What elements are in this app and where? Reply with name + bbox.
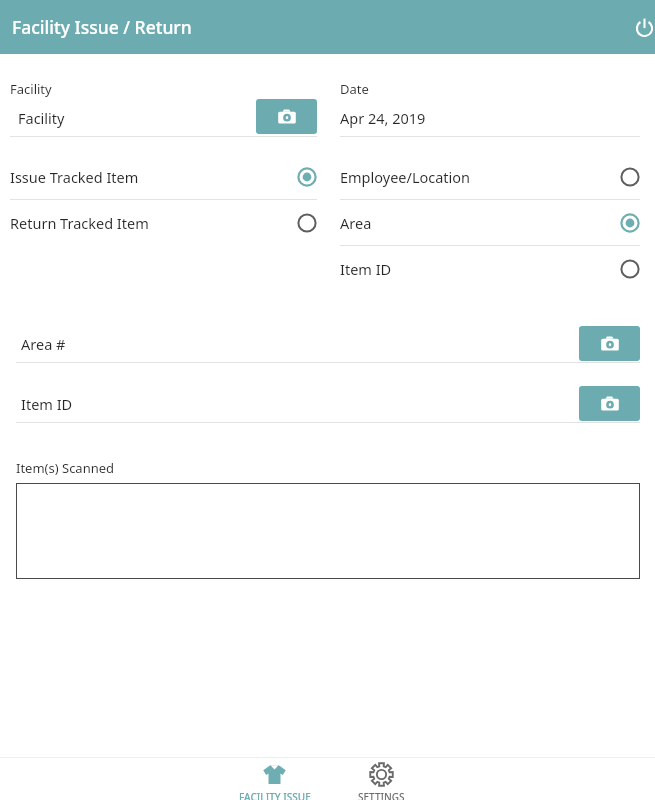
staticText: Facility bbox=[10, 80, 52, 98]
staticText: Item ID bbox=[340, 259, 620, 279]
button[interactable]: Apr 24, 2019 bbox=[340, 100, 640, 136]
button[interactable]: Item ID bbox=[16, 385, 640, 422]
staticText: Area bbox=[340, 213, 620, 233]
staticText: FACILITY ISSUE bbox=[239, 790, 311, 800]
button[interactable]: Item ID bbox=[340, 246, 640, 291]
staticText: Item ID bbox=[21, 394, 73, 414]
button[interactable]: Area # bbox=[16, 325, 640, 362]
button[interactable]: Facility bbox=[10, 100, 317, 136]
button[interactable]: Issue Tracked Item bbox=[10, 154, 317, 199]
staticText: Facility bbox=[18, 108, 65, 128]
button[interactable]: Scan with camera bbox=[256, 99, 317, 134]
button[interactable]: SETTINGS bbox=[333, 758, 430, 800]
button[interactable]: FACILITY ISSUE bbox=[226, 758, 323, 800]
staticText: Item(s) Scanned bbox=[16, 459, 115, 477]
staticText: Facility Issue / Return bbox=[12, 15, 192, 39]
staticText: Return Tracked Item bbox=[10, 213, 297, 233]
staticText: Employee/Location bbox=[340, 167, 620, 187]
staticText: SETTINGS bbox=[358, 790, 405, 800]
button[interactable]: Return Tracked Item bbox=[10, 200, 317, 245]
button[interactable]: Employee/Location bbox=[340, 154, 640, 199]
staticText: Date bbox=[340, 80, 369, 98]
button[interactable] bbox=[16, 483, 640, 579]
button[interactable]: Area bbox=[340, 200, 640, 245]
button[interactable]: Scan with camera bbox=[579, 386, 640, 421]
staticText: Apr 24, 2019 bbox=[340, 108, 426, 128]
button[interactable]: Scan with camera bbox=[579, 326, 640, 361]
staticText: Issue Tracked Item bbox=[10, 167, 297, 187]
staticText: Area # bbox=[21, 334, 66, 354]
button[interactable]: Power / Log out bbox=[624, 7, 655, 47]
